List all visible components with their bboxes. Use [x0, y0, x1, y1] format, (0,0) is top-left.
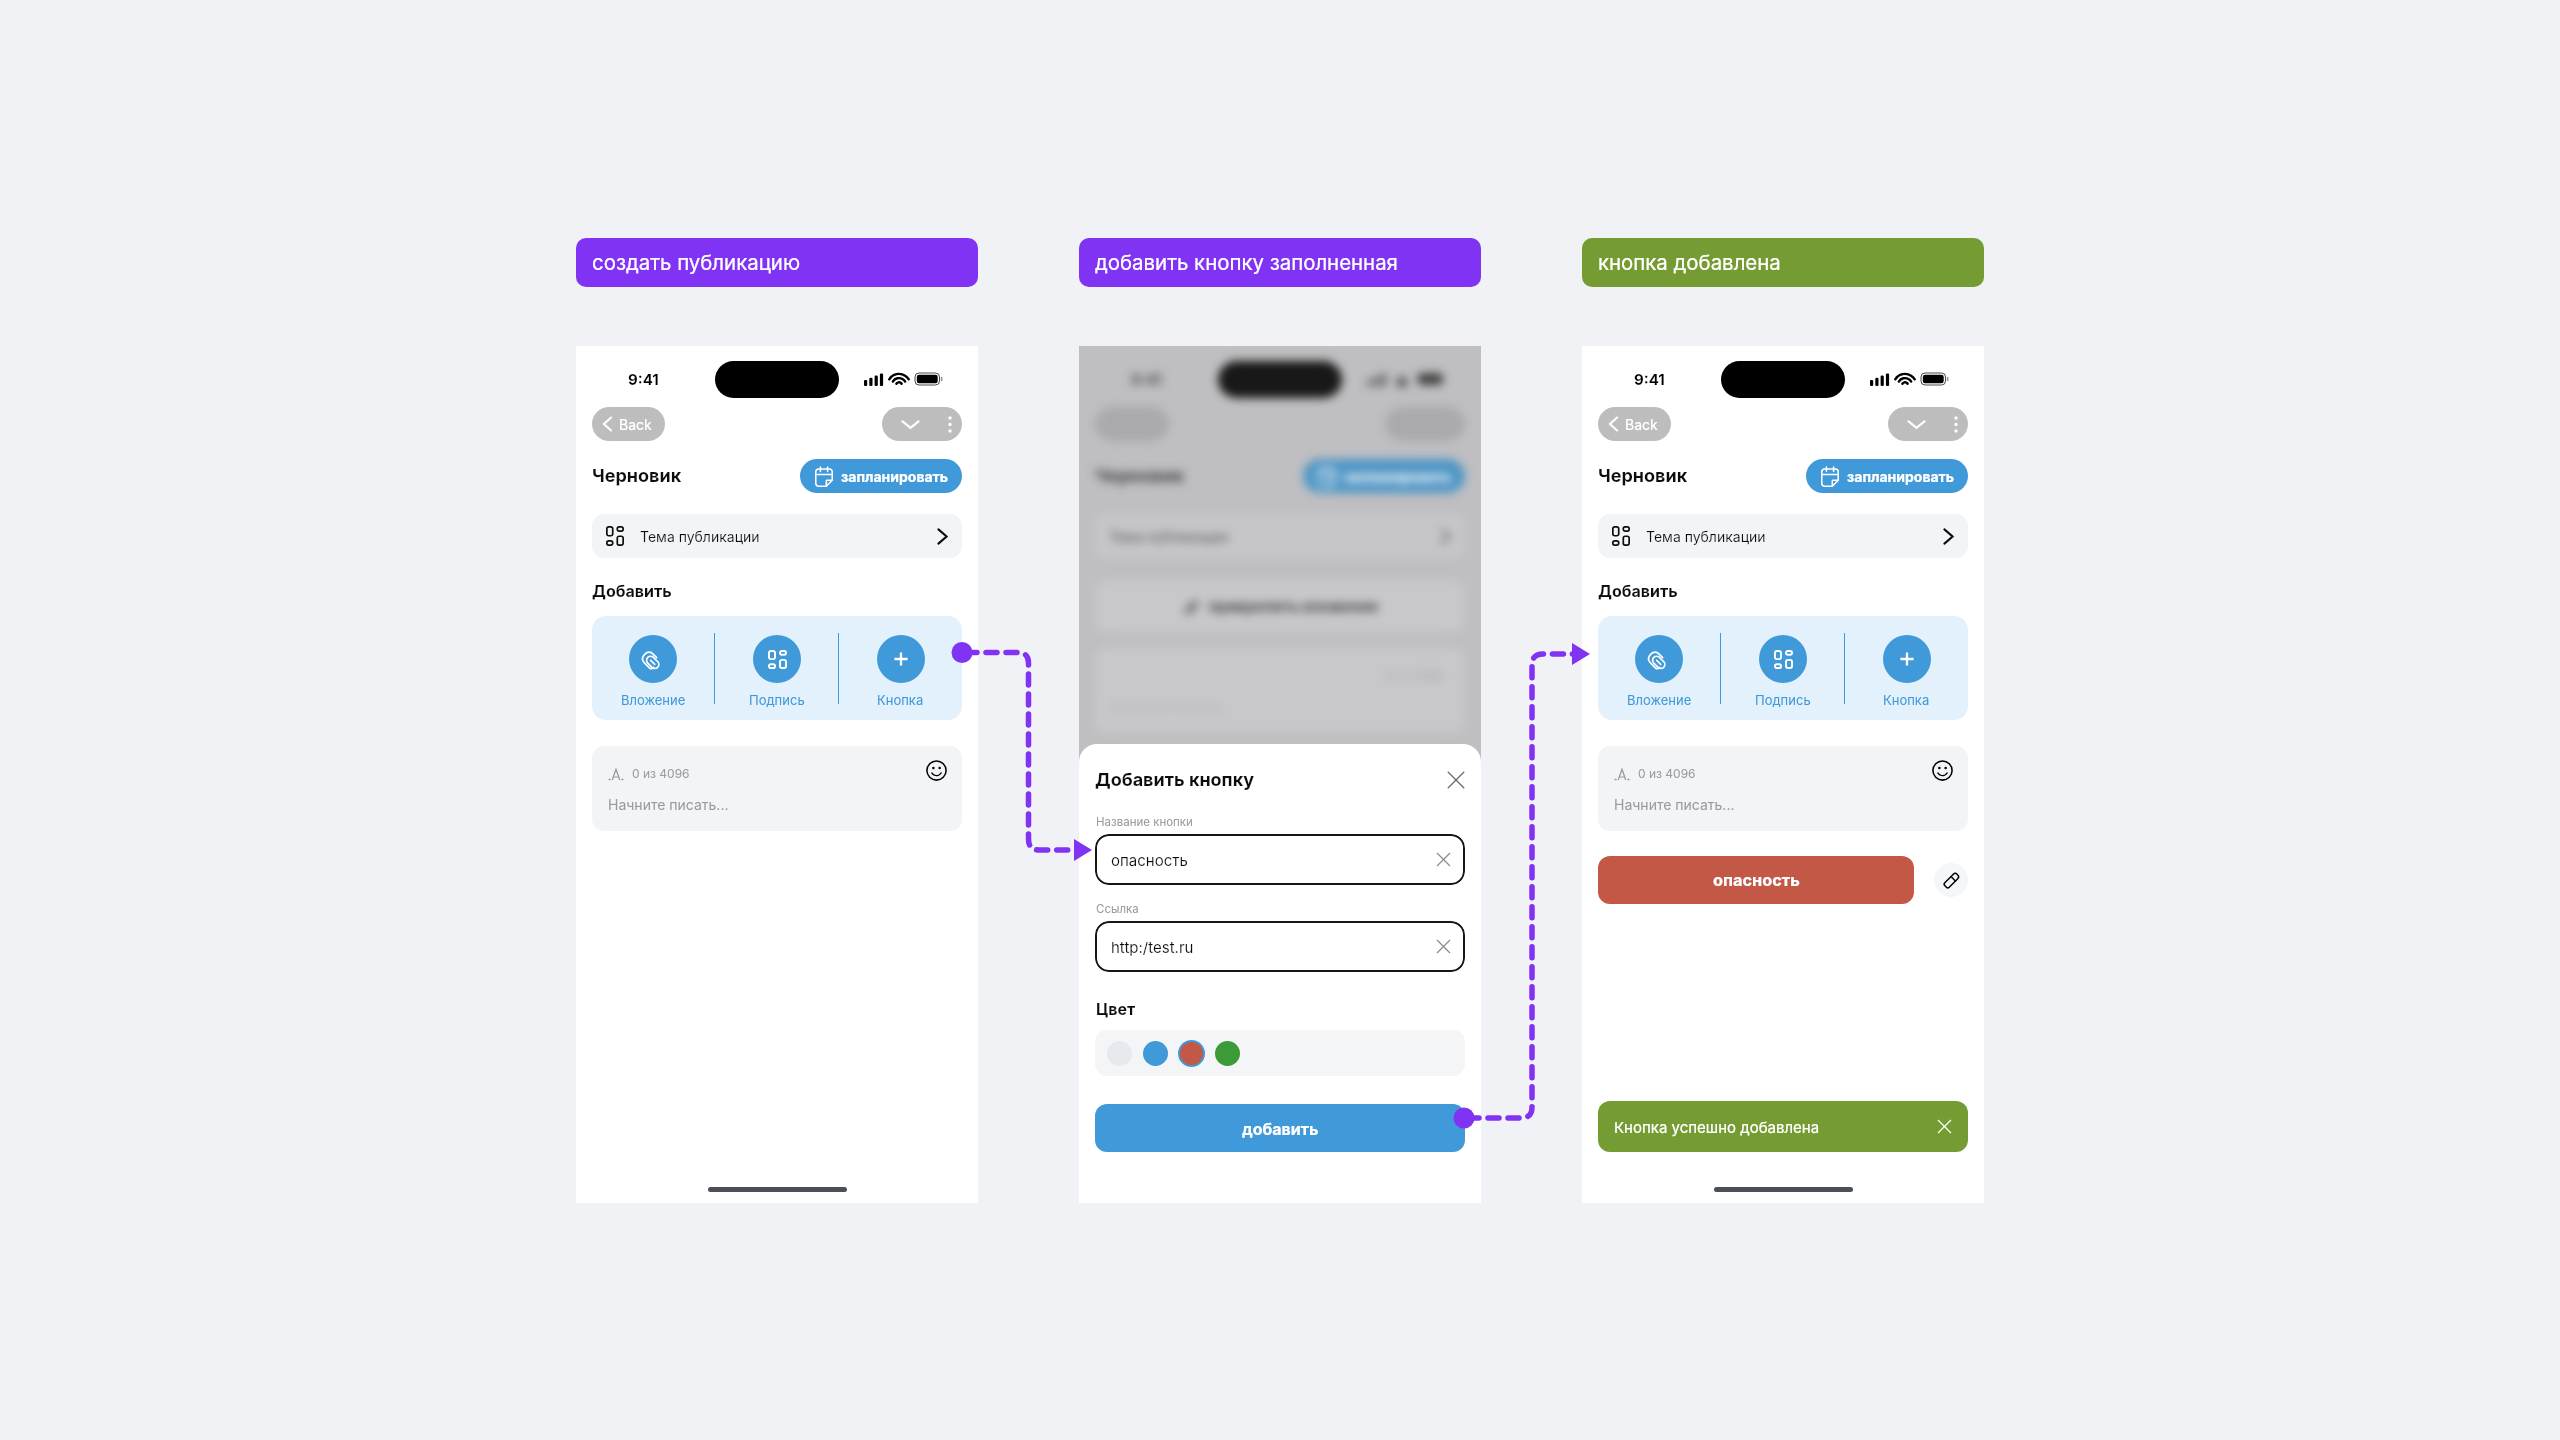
- staticText: запланировать: [1847, 468, 1955, 485]
- staticText: Название кнопки: [1096, 815, 1193, 829]
- staticText: Черновик: [1598, 465, 1688, 487]
- staticText: 0 из 4096: [632, 766, 690, 781]
- staticText: Тема публикации: [640, 528, 760, 545]
- button[interactable]: опасность: [1598, 856, 1914, 904]
- staticText: добавить: [1242, 1119, 1319, 1138]
- button[interactable]: Ещё: [1944, 416, 1968, 433]
- staticText: опасность: [1713, 870, 1800, 890]
- staticText: Подпись: [1755, 692, 1811, 708]
- button[interactable]: 0 из 4096: [592, 746, 962, 831]
- button[interactable]: Развернуть: [882, 407, 962, 441]
- button[interactable]: Эмодзи: [926, 760, 947, 781]
- staticText: Вложение: [621, 692, 686, 708]
- button[interactable]: Кнопка: [1845, 616, 1968, 720]
- button[interactable]: Закрыть: [1447, 771, 1465, 789]
- button[interactable]: Вложение: [1598, 616, 1720, 720]
- button[interactable]: Развернуть: [1888, 407, 1968, 441]
- staticText: Back: [619, 416, 652, 433]
- staticText: http:/test.ru: [1111, 938, 1194, 956]
- button[interactable]: Подпись: [715, 616, 838, 720]
- button[interactable]: Ещё: [938, 416, 962, 433]
- button[interactable]: [1209, 1035, 1245, 1071]
- staticText: прикрепить вложение: [1209, 597, 1379, 615]
- button[interactable]: Очистить: [1437, 940, 1450, 953]
- button[interactable]: Тема публикации: [1598, 514, 1968, 558]
- button[interactable]: запланировать: [800, 459, 962, 493]
- button[interactable]: создать публикацию: [576, 238, 978, 287]
- staticText: создать публикацию: [592, 250, 801, 275]
- staticText: кнопка добавлена: [1598, 250, 1781, 275]
- staticText: 9:41: [1131, 370, 1162, 388]
- staticText: Начните писать...: [608, 796, 729, 813]
- button[interactable]: http:/test.ru: [1095, 921, 1465, 972]
- staticText: опасность: [1111, 851, 1188, 869]
- button[interactable]: Тема публикации: [592, 514, 962, 558]
- staticText: Кнопка: [1883, 692, 1930, 708]
- button[interactable]: добавить: [1095, 1104, 1465, 1152]
- button[interactable]: [1101, 1035, 1137, 1071]
- staticText: 0 из 4096: [1638, 766, 1696, 781]
- button[interactable]: Back: [1598, 407, 1671, 441]
- staticText: Подпись: [749, 692, 805, 708]
- button[interactable]: Back: [592, 407, 665, 441]
- staticText: Добавить кнопку: [1095, 769, 1255, 791]
- button[interactable]: [1173, 1035, 1209, 1071]
- staticText: Ссылка: [1096, 902, 1139, 916]
- button[interactable]: запланировать: [1806, 459, 1968, 493]
- button[interactable]: [1137, 1035, 1173, 1071]
- staticText: добавить кнопку заполненная: [1095, 250, 1398, 275]
- staticText: Цвет: [1096, 999, 1136, 1018]
- button[interactable]: Развернуть: [882, 419, 938, 430]
- staticText: Черновик: [1095, 465, 1185, 487]
- staticText: Back: [1625, 416, 1658, 433]
- button[interactable]: Эмодзи: [1932, 760, 1953, 781]
- staticText: Черновик: [592, 465, 682, 487]
- button[interactable]: кнопка добавлена: [1582, 238, 1984, 287]
- button[interactable]: Редактировать: [1934, 863, 1968, 897]
- staticText: 9:41: [1634, 370, 1665, 388]
- button[interactable]: Очистить: [1437, 853, 1450, 866]
- staticText: Кнопка: [877, 692, 924, 708]
- button[interactable]: Кнопка: [839, 616, 962, 720]
- staticText: Кнопка успешно добавлена: [1614, 1118, 1820, 1136]
- staticText: Тема публикации: [1646, 528, 1766, 545]
- staticText: Начните писать...: [1614, 796, 1735, 813]
- staticText: 9:41: [628, 370, 659, 388]
- button[interactable]: Закрыть: [1938, 1120, 1951, 1133]
- staticText: Тема публикации: [1109, 528, 1229, 545]
- button[interactable]: Подпись: [1721, 616, 1844, 720]
- button[interactable]: Вложение: [592, 616, 714, 720]
- staticText: запланировать: [1344, 468, 1452, 485]
- button[interactable]: 0 из 4096: [1598, 746, 1968, 831]
- button[interactable]: опасность: [1095, 834, 1465, 885]
- button[interactable]: добавить кнопку заполненная: [1079, 238, 1481, 287]
- staticText: запланировать: [841, 468, 949, 485]
- staticText: Вложение: [1627, 692, 1692, 708]
- button[interactable]: Кнопка успешно добавлена: [1598, 1101, 1968, 1152]
- button[interactable]: Развернуть: [1888, 419, 1944, 430]
- staticText: Добавить: [592, 581, 672, 600]
- staticText: Добавить: [1598, 581, 1678, 600]
